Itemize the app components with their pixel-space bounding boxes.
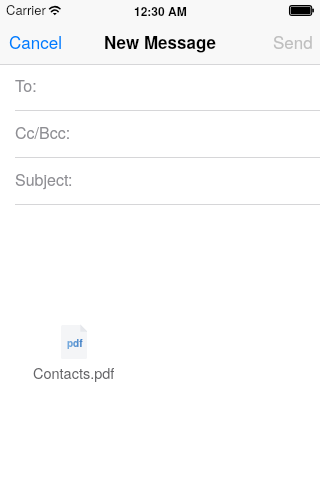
button[interactable]: Send [273, 29, 313, 53]
staticText: 12:30 AM [134, 2, 187, 19]
staticText: Send [273, 29, 313, 53]
staticText: pdf [67, 336, 83, 350]
staticText: New Message [104, 30, 216, 54]
button[interactable]: Cancel [9, 29, 62, 53]
button[interactable]: Contacts.pdf attachment [61, 325, 87, 359]
button[interactable]: To: [0, 64, 320, 111]
button[interactable]: Subject: [0, 158, 320, 205]
staticText: Cancel [9, 29, 62, 53]
staticText: Contacts.pdf [33, 362, 115, 383]
button[interactable]: Cc/Bcc: [0, 111, 320, 158]
staticText: Carrier [6, 0, 46, 19]
staticText: To: [15, 74, 37, 97]
staticText: Subject: [15, 168, 73, 191]
staticText: Cc/Bcc: [15, 121, 71, 144]
